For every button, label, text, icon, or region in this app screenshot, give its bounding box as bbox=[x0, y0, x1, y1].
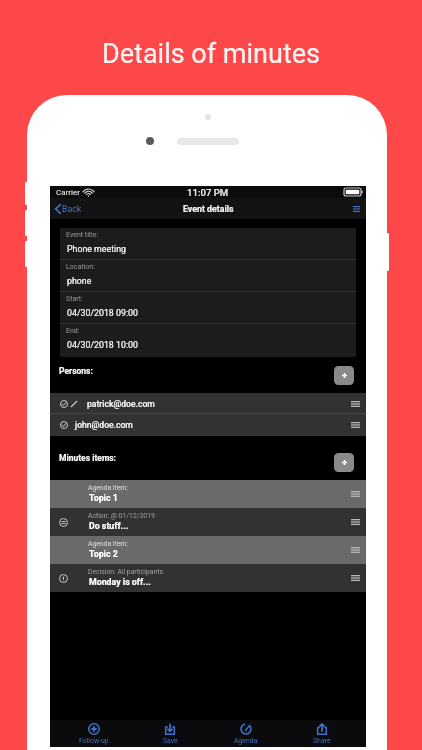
button[interactable]: End: bbox=[60, 324, 356, 356]
button[interactable]: john@doe.com bbox=[50, 414, 366, 436]
staticText: Topic 2 bbox=[89, 549, 118, 559]
staticText: Details of minutes bbox=[0, 38, 422, 70]
button[interactable]: patrick@doe.com bbox=[50, 393, 366, 414]
button[interactable]: Share bbox=[284, 720, 360, 747]
staticText: Carrier bbox=[56, 188, 80, 197]
staticText: Do stuff... bbox=[89, 521, 129, 531]
staticText: Back bbox=[62, 204, 82, 214]
staticText: patrick@doe.com bbox=[87, 399, 155, 409]
staticText: john@doe.com bbox=[75, 420, 133, 430]
button[interactable]: Agenda item: bbox=[50, 536, 366, 564]
staticText: Action: @ 01/12/2019 bbox=[88, 512, 155, 520]
staticText: Agenda item: bbox=[88, 540, 128, 548]
staticText: Follow-up bbox=[79, 737, 109, 745]
button[interactable]: Add bbox=[334, 366, 354, 385]
button[interactable]: Save bbox=[132, 720, 208, 747]
staticText: Agenda item: bbox=[88, 484, 128, 492]
button[interactable]: Start: bbox=[60, 292, 356, 324]
button[interactable]: Add bbox=[334, 453, 354, 472]
staticText: Minutes items: bbox=[59, 453, 117, 463]
staticText: Event details bbox=[183, 204, 234, 214]
staticText: Phone meeting bbox=[67, 244, 126, 254]
staticText: Start: bbox=[66, 295, 83, 303]
staticText: 04/30/2018 09:00 bbox=[67, 308, 138, 318]
staticText: End: bbox=[66, 327, 80, 335]
staticText: Topic 1 bbox=[89, 493, 118, 503]
staticText: Share bbox=[313, 737, 331, 745]
button[interactable]: Menu bbox=[347, 198, 366, 219]
staticText: Monday is off... bbox=[89, 577, 151, 587]
staticText: 11:07 PM bbox=[187, 187, 229, 198]
button[interactable]: Agenda bbox=[208, 720, 284, 747]
staticText: phone bbox=[67, 276, 92, 286]
button[interactable]: Location: bbox=[60, 260, 356, 292]
button[interactable]: Follow-up bbox=[56, 720, 132, 747]
staticText: Save bbox=[163, 737, 178, 745]
button[interactable]: Decision: All participants bbox=[50, 564, 366, 592]
button[interactable]: Back bbox=[50, 198, 88, 219]
staticText: 04/30/2018 10:00 bbox=[67, 340, 138, 350]
staticText: Persons: bbox=[59, 366, 93, 376]
staticText: Location: bbox=[66, 263, 95, 271]
button[interactable]: Action: @ 01/12/2019 bbox=[50, 508, 366, 536]
button[interactable]: Agenda item: bbox=[50, 480, 366, 508]
staticText: Decision: All participants bbox=[88, 568, 163, 576]
staticText: Agenda bbox=[234, 737, 258, 745]
button[interactable]: Event title: bbox=[60, 228, 356, 260]
staticText: Event title: bbox=[66, 231, 99, 239]
